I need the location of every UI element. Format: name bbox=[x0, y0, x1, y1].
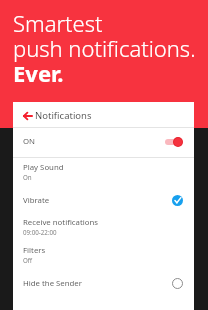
staticText: Smartest push notifications. Ever. bbox=[13, 8, 196, 88]
staticText: ON bbox=[23, 136, 36, 147]
staticText: Receive notifications bbox=[23, 217, 99, 228]
button[interactable]: ON bbox=[13, 128, 194, 157]
staticText: Hide the Sender bbox=[23, 278, 82, 289]
staticText: Off bbox=[23, 256, 33, 264]
button[interactable]: Receive notifications bbox=[13, 213, 194, 241]
staticText: Notifications bbox=[35, 109, 92, 122]
staticText: Vibrate bbox=[23, 195, 50, 206]
staticText: 09:00-22:00 bbox=[23, 228, 57, 236]
button[interactable]: Vibrate bbox=[13, 186, 194, 214]
staticText: Play Sound bbox=[23, 162, 64, 173]
button[interactable]: Hide the Sender bbox=[13, 269, 194, 297]
other: Back bbox=[20, 107, 36, 124]
button[interactable]: Play Sound bbox=[13, 158, 194, 186]
staticText: Filters bbox=[23, 245, 46, 256]
staticText: On bbox=[23, 173, 32, 181]
button[interactable]: Filters bbox=[13, 241, 194, 269]
button[interactable]: Back bbox=[13, 102, 194, 127]
